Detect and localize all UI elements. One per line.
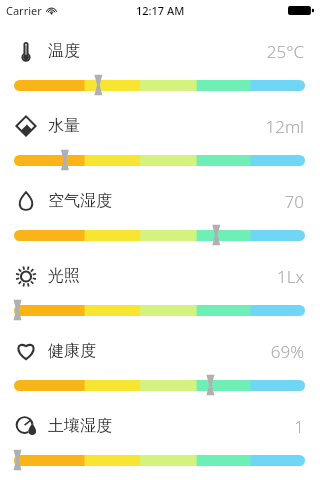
staticText: 12:17 AM (136, 3, 185, 18)
staticText: 光照 (48, 266, 80, 286)
button[interactable]: 空气湿度 (0, 178, 320, 253)
staticText: Carrier (6, 3, 42, 18)
button[interactable]: 土壤湿度 (0, 403, 320, 478)
staticText: 70 (284, 190, 304, 213)
staticText: 温度 (48, 41, 80, 61)
staticText: 土壤湿度 (48, 416, 112, 436)
button[interactable]: 健康度 (0, 328, 320, 403)
button[interactable]: 温度 (0, 28, 320, 103)
staticText: 1Lx (276, 265, 304, 288)
staticText: 空气湿度 (48, 191, 112, 211)
button[interactable]: 水量 (0, 103, 320, 178)
staticText: 12ml (265, 115, 304, 138)
staticText: 水量 (48, 116, 80, 136)
staticText: 1 (294, 415, 304, 438)
staticText: 健康度 (48, 341, 96, 361)
staticText: 69% (270, 340, 304, 363)
button[interactable]: 光照 (0, 253, 320, 328)
staticText: 25°C (266, 40, 304, 63)
